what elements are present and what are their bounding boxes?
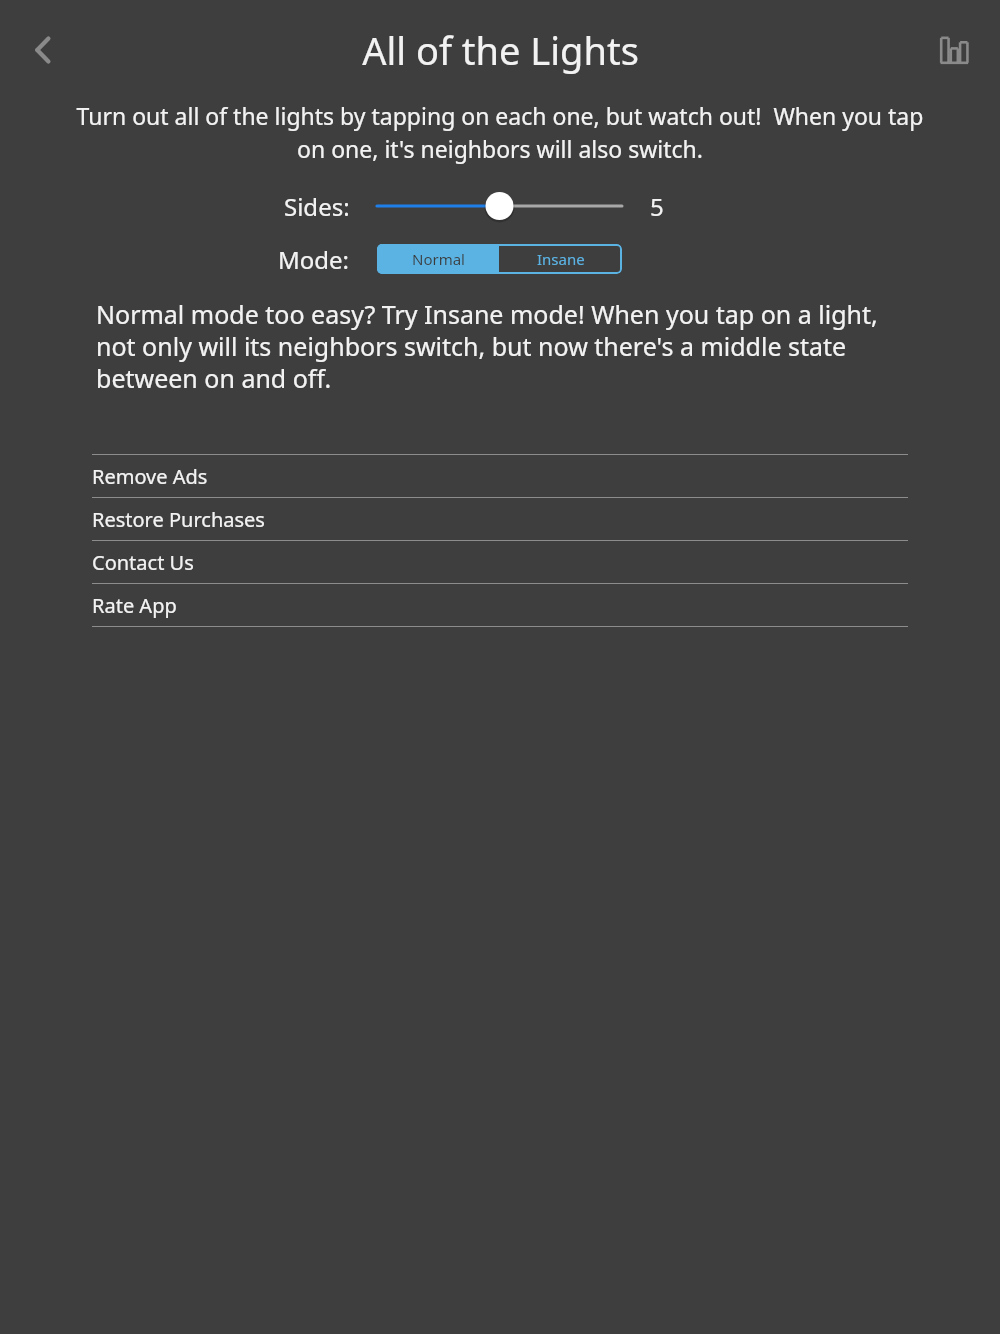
staticText: All of the Lights (362, 24, 639, 76)
staticText: Normal (412, 249, 465, 269)
staticText: Sides: (284, 190, 350, 223)
staticText: Restore Purchases (92, 506, 265, 533)
staticText: Turn out all of the lights by tapping on… (64, 100, 936, 165)
button[interactable]: Sides slider (377, 183, 622, 229)
button[interactable]: Restore Purchases (92, 498, 908, 540)
staticText: Normal mode too easy? Try Insane mode! W… (96, 297, 910, 395)
staticText: Insane (537, 249, 585, 269)
button[interactable]: Back (14, 21, 72, 79)
button[interactable]: Normal (377, 244, 499, 274)
staticText: 5 (650, 190, 664, 223)
staticText: Remove Ads (92, 463, 208, 490)
staticText: Mode: (278, 243, 350, 276)
staticText: Rate App (92, 592, 177, 619)
button[interactable]: Remove Ads (92, 455, 908, 497)
button[interactable]: Contact Us (92, 541, 908, 583)
staticText: Contact Us (92, 549, 194, 576)
button[interactable]: Statistics (926, 22, 982, 78)
button[interactable]: Insane (499, 244, 622, 274)
button[interactable]: Rate App (92, 584, 908, 626)
